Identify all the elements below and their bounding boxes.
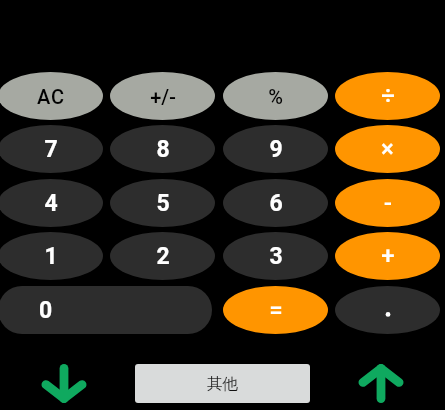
button[interactable]: +/- (110, 72, 215, 120)
staticText: ÷ (381, 82, 395, 110)
staticText: 0 (39, 297, 53, 324)
staticText: 其他 (207, 374, 238, 394)
button[interactable]: + (335, 232, 440, 280)
staticText: 6 (269, 190, 283, 217)
staticText: × (381, 135, 394, 163)
button[interactable]: 0 (0, 286, 212, 334)
button[interactable]: 其他 (135, 364, 310, 403)
button[interactable]: 7 (0, 125, 103, 173)
button[interactable]: × (335, 125, 440, 173)
button[interactable]: 8 (110, 125, 215, 173)
button[interactable]: 3 (223, 232, 328, 280)
button[interactable]: 6 (223, 179, 328, 227)
staticText: 5 (156, 190, 170, 217)
button[interactable]: 2 (110, 232, 215, 280)
staticText: 7 (44, 136, 58, 163)
staticText: AC (37, 85, 65, 108)
staticText: 2 (156, 243, 170, 270)
button[interactable]: AC (0, 72, 103, 120)
button[interactable]: = (223, 286, 328, 334)
button[interactable]: Decimal point (335, 286, 440, 334)
staticText: 4 (44, 190, 58, 217)
button[interactable]: ÷ (335, 72, 440, 120)
staticText: = (269, 296, 283, 324)
staticText: - (384, 189, 392, 217)
button[interactable]: % (223, 72, 328, 120)
button[interactable]: - (335, 179, 440, 227)
staticText: +/- (150, 85, 176, 108)
staticText: % (268, 85, 283, 108)
staticText: 3 (269, 243, 283, 270)
button[interactable]: 5 (110, 179, 215, 227)
button[interactable]: 4 (0, 179, 103, 227)
button[interactable]: Scroll up (358, 364, 404, 403)
button[interactable]: 9 (223, 125, 328, 173)
button[interactable]: Scroll down (41, 364, 87, 403)
staticText: 8 (156, 136, 170, 163)
staticText: + (381, 242, 395, 270)
staticText: 1 (44, 243, 58, 270)
staticText: 9 (269, 136, 283, 163)
button[interactable]: 1 (0, 232, 103, 280)
